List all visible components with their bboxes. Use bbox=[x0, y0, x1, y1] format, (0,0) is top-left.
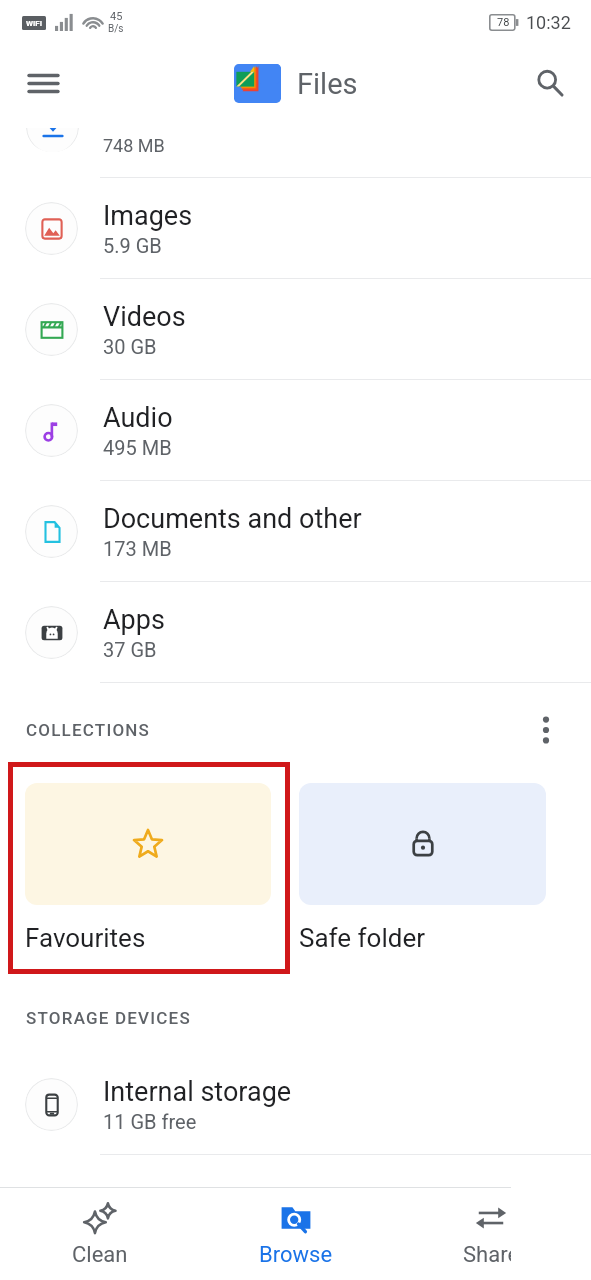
button[interactable]: Apps bbox=[0, 582, 591, 683]
staticText: Apps bbox=[103, 604, 165, 636]
staticText: Clean bbox=[72, 1242, 128, 1268]
staticText: 495 MB bbox=[103, 436, 172, 459]
staticText: Internal storage bbox=[103, 1076, 292, 1108]
button[interactable]: Browse bbox=[201, 1188, 391, 1280]
staticText: Files bbox=[297, 67, 358, 101]
staticText: 37 GB bbox=[103, 638, 157, 661]
button[interactable]: Videos bbox=[0, 279, 591, 380]
button[interactable]: Share bbox=[396, 1188, 586, 1280]
staticText: WIFI bbox=[26, 19, 43, 28]
staticText: Images bbox=[103, 200, 193, 232]
staticText: B/s bbox=[108, 23, 124, 35]
staticText: 748 MB bbox=[103, 135, 165, 156]
staticText: 10:32 bbox=[526, 12, 571, 33]
button[interactable]: Internal storage bbox=[0, 1054, 591, 1155]
staticText: Documents and other bbox=[103, 503, 362, 535]
staticText: STORAGE DEVICES bbox=[26, 1008, 191, 1028]
staticText: Share bbox=[463, 1242, 520, 1268]
staticText: Videos bbox=[103, 301, 186, 333]
button[interactable]: Open navigation menu bbox=[16, 56, 70, 110]
button[interactable]: Search bbox=[523, 56, 577, 110]
button[interactable]: More options bbox=[525, 709, 567, 751]
staticText: Audio bbox=[103, 402, 173, 434]
staticText: COLLECTIONS bbox=[26, 720, 151, 740]
button[interactable] bbox=[299, 783, 546, 905]
staticText: 78 bbox=[497, 16, 510, 29]
staticText: 45 bbox=[110, 10, 123, 23]
staticText: 173 MB bbox=[103, 537, 172, 560]
staticText: 30 GB bbox=[103, 335, 157, 358]
button[interactable] bbox=[25, 783, 271, 905]
button[interactable]: Audio bbox=[0, 380, 591, 481]
staticText: Browse bbox=[259, 1242, 333, 1268]
staticText: 11 GB free bbox=[103, 1110, 197, 1133]
button[interactable]: Documents and other bbox=[0, 481, 591, 582]
staticText: Safe folder bbox=[299, 923, 426, 953]
button[interactable]: Images bbox=[0, 178, 591, 279]
staticText: 5.9 GB bbox=[103, 234, 162, 257]
button[interactable]: Clean bbox=[5, 1188, 195, 1280]
staticText: Favourites bbox=[25, 923, 146, 953]
